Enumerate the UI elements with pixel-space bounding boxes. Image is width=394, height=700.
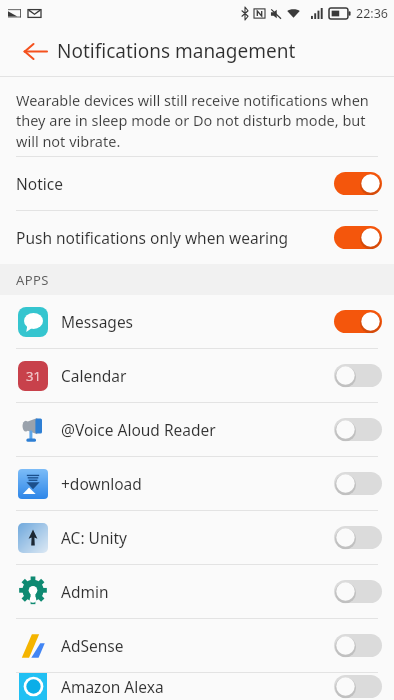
button[interactable]: Amazon Alexa [0,673,394,700]
staticText: Calendar [61,365,334,386]
button[interactable]: On [334,226,382,249]
staticText: Wearable devices will still receive noti… [16,90,380,152]
button[interactable]: 31 [0,349,394,402]
button[interactable]: Off [334,364,382,387]
button[interactable]: Back [12,28,58,74]
button[interactable]: Off [334,580,382,603]
button[interactable]: Off [334,472,382,495]
staticText: 22:36 [356,5,388,22]
staticText: Push notifications only when wearing dev… [16,227,332,248]
staticText: @Voice Aloud Reader [61,419,334,440]
button[interactable]: @Voice Aloud Reader [0,403,394,456]
button[interactable]: Off [334,418,382,441]
staticText: 31 [26,367,41,385]
staticText: APPS [16,271,49,289]
button[interactable]: Admin [0,565,394,618]
button[interactable]: Off [334,675,382,698]
button[interactable]: +download [0,457,394,510]
button[interactable]: Off [334,634,382,657]
staticText: Notice [16,173,332,194]
staticText: Messages [61,311,334,332]
button[interactable]: Notice [0,157,394,210]
staticText: AdSense [61,635,334,656]
button[interactable]: Messages [0,295,394,348]
button[interactable]: Off [334,526,382,549]
button[interactable]: AC: Unity [0,511,394,564]
button[interactable]: AdSense [0,619,394,672]
staticText: +download [61,473,334,494]
staticText: AC: Unity [61,527,334,548]
staticText: Amazon Alexa [61,676,334,697]
staticText: Admin [61,581,334,602]
button[interactable]: On [334,172,382,195]
button[interactable]: On [334,310,382,333]
staticText: Notifications management [57,38,296,64]
button[interactable]: Push notifications only when wearing dev… [0,211,394,264]
